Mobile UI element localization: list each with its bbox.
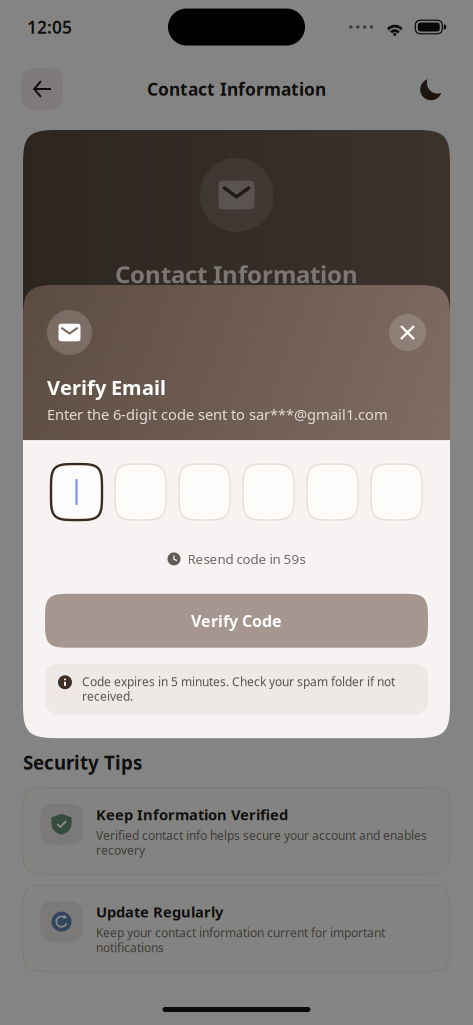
staticText: Keep your contact information current fo… xyxy=(96,925,385,955)
staticText: Code expires in 5 minutes. Check your sp… xyxy=(82,674,395,704)
button[interactable]: Close xyxy=(389,314,426,351)
button[interactable]: Update Regularly xyxy=(23,885,450,971)
staticText: Security Tips xyxy=(23,750,142,775)
button[interactable]: Toggle dark mode xyxy=(410,68,452,110)
staticText: Verify Code xyxy=(191,610,282,631)
staticText: 12:05 xyxy=(27,15,72,38)
staticText: Keep Information Verified xyxy=(96,805,288,824)
button[interactable]: Verify Code xyxy=(45,594,428,648)
staticText: Contact Information xyxy=(147,77,326,100)
staticText: Update Regularly xyxy=(96,902,223,922)
button[interactable]: Back xyxy=(21,68,63,110)
staticText: Verify Email xyxy=(47,374,166,401)
staticText: Resend code in 59s xyxy=(187,550,305,568)
staticText: Enter the 6-digit code sent to sar***@gm… xyxy=(47,405,388,424)
button[interactable]: Keep Information Verified xyxy=(23,788,450,874)
staticText: Verified contact info helps secure your … xyxy=(96,827,427,858)
staticText: Contact Information xyxy=(115,258,358,290)
